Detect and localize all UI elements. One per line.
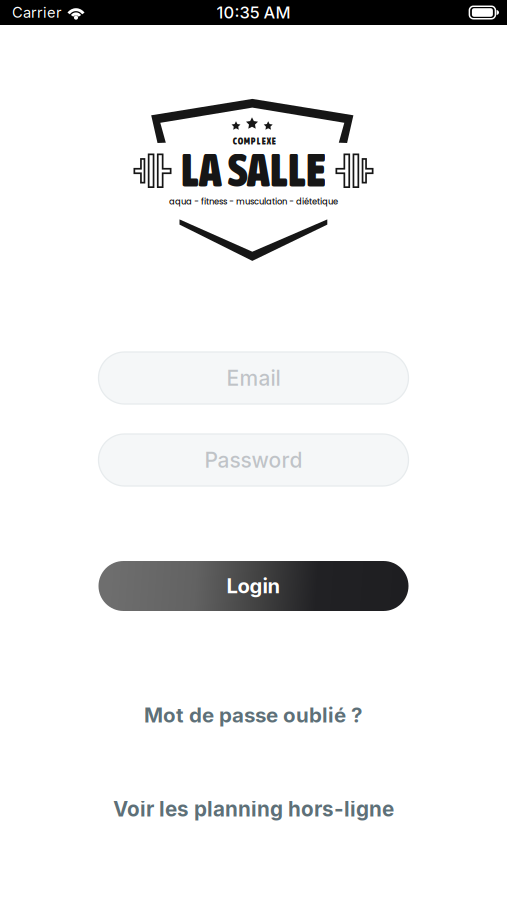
staticText: C O M P L E X E: [233, 136, 276, 147]
staticText: Carrier: [12, 4, 62, 21]
staticText: aqua - fitness - musculation - diétetiqu…: [169, 196, 338, 207]
staticText: Mot de passe oublié ?: [144, 703, 363, 727]
button[interactable]: Mot de passe oublié ?: [103, 700, 403, 730]
button[interactable]: Password: [98, 434, 408, 486]
staticText: 10:35 AM: [216, 2, 290, 22]
staticText: LA SALLE: [181, 144, 326, 196]
button[interactable]: Login: [98, 561, 408, 611]
staticText: Email: [226, 365, 280, 391]
staticText: Login: [226, 574, 280, 598]
button[interactable]: Voir les planning hors-ligne: [83, 794, 423, 824]
staticText: Voir les planning hors-ligne: [113, 796, 394, 821]
button[interactable]: Email: [98, 352, 408, 404]
staticText: Password: [204, 447, 302, 473]
